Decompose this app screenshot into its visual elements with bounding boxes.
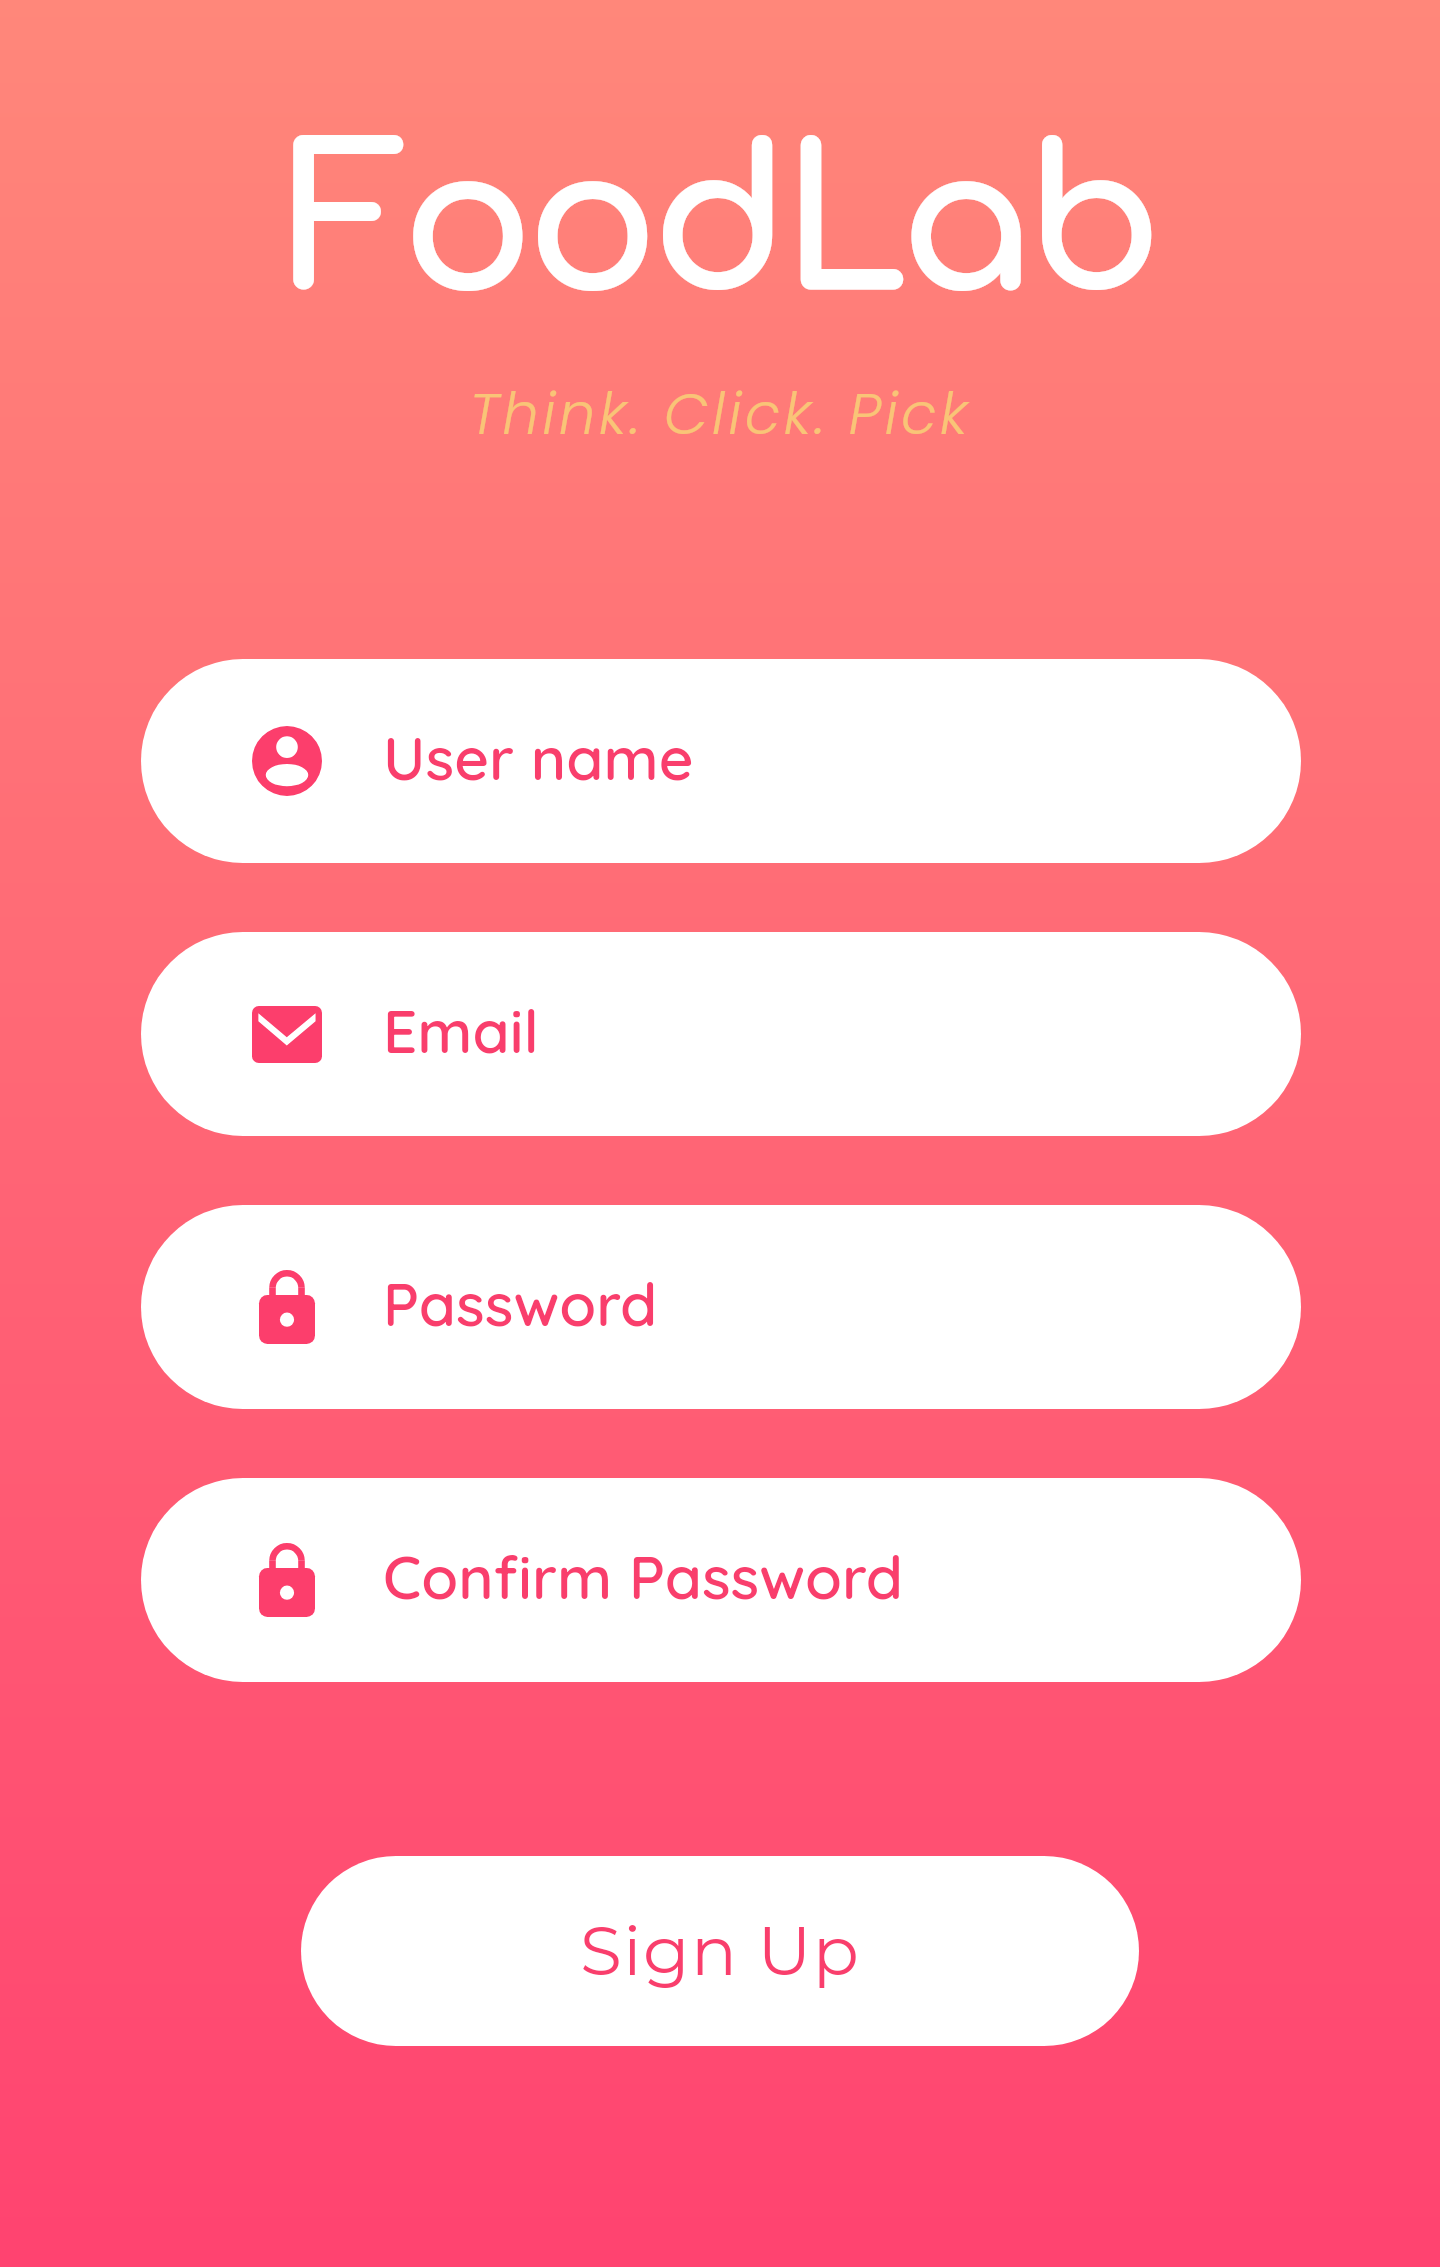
staticText: User name xyxy=(383,720,694,795)
button[interactable]: Email xyxy=(141,932,1301,1136)
staticText: Confirm Password xyxy=(383,1539,904,1614)
button[interactable]: Password xyxy=(141,1205,1301,1409)
staticText: Sign Up xyxy=(580,1909,861,1992)
other: Password xyxy=(259,1543,315,1617)
button[interactable]: Password xyxy=(141,1478,1301,1682)
button[interactable]: User xyxy=(141,659,1301,863)
staticText: Email xyxy=(383,993,539,1068)
staticText: Password xyxy=(383,1266,658,1341)
staticText: Think. Click. Pick xyxy=(469,373,971,454)
staticText: FoodLab xyxy=(286,116,1155,337)
button[interactable]: Sign Up xyxy=(301,1856,1139,2046)
other: Email xyxy=(252,1006,322,1063)
other: Password xyxy=(259,1270,315,1344)
other: User xyxy=(252,726,322,796)
